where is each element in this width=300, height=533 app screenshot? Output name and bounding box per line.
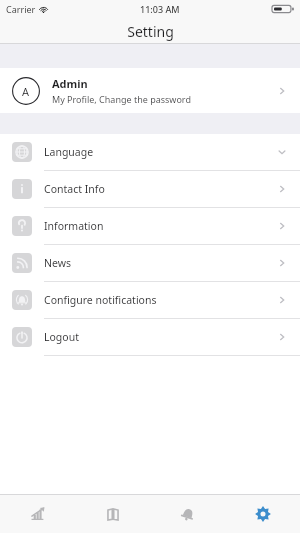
button[interactable]: Notifications [150, 495, 225, 533]
staticText: A [22, 84, 30, 99]
staticText: Language [44, 145, 276, 159]
staticText: 11:03 AM [140, 3, 180, 15]
button[interactable]: News [0, 245, 300, 281]
staticText: Setting [127, 22, 174, 41]
staticText: Carrier [6, 3, 36, 15]
button[interactable]: Settings [225, 495, 300, 533]
button[interactable]: A [0, 68, 300, 113]
staticText: Configure notifications [44, 293, 276, 307]
staticText: Information [44, 219, 276, 233]
staticText: Logout [44, 330, 276, 344]
staticText: My Profile, Change the password [52, 93, 191, 105]
button[interactable]: Language [0, 134, 300, 170]
staticText: Admin [52, 76, 88, 91]
staticText: Contact Info [44, 182, 276, 196]
button[interactable]: Logout [0, 319, 300, 355]
button[interactable]: Analytics [0, 495, 75, 533]
button[interactable]: Information [0, 208, 300, 244]
staticText: News [44, 256, 276, 270]
button[interactable]: Map [75, 495, 150, 533]
button[interactable]: Configure notifications [0, 282, 300, 318]
button[interactable]: Contact Info [0, 171, 300, 207]
